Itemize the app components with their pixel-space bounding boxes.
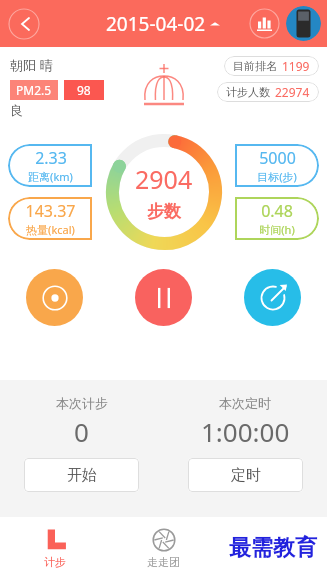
staticText: 走走团 [147,555,180,569]
button[interactable]: Back [8,8,40,40]
button[interactable]: 目前排名 [224,56,319,76]
button[interactable]: 定时 [188,458,303,492]
staticText: 计步 [44,555,66,569]
button[interactable]: Pause [135,269,192,326]
staticText: 距离(km) [28,169,73,184]
button[interactable]: 2.33 [8,144,92,187]
button[interactable]: 5000 [235,144,319,187]
button[interactable]: 开始 [24,458,139,492]
button[interactable]: Profile [286,6,321,41]
button[interactable]: 走走团 [109,517,218,579]
staticText: 0 [74,414,89,449]
staticText: 143.37 [25,200,76,222]
staticText: 开始 [67,466,97,485]
button[interactable]: 计步 [0,517,109,579]
button[interactable]: Statistics [249,8,280,39]
staticText: 时间(h) [259,222,295,237]
staticText: 本次定时 [219,395,271,411]
staticText: 2904 [135,162,193,196]
staticText: 热量(kcal) [26,222,75,237]
staticText: 1:00:00 [201,414,290,449]
staticText: 计步人数 [226,85,270,99]
staticText: PM2.5 [16,82,52,98]
staticText: 98 [77,82,91,98]
button[interactable]: 计步人数 [217,82,319,102]
button[interactable]: Locate [26,269,83,326]
button[interactable]: 0.48 [235,197,319,240]
staticText: 22974 [275,84,310,100]
button[interactable]: Share [244,269,301,326]
staticText: 本次计步 [56,395,108,411]
staticText: 2015-04-02 [106,11,206,37]
staticText: 目标(步) [257,169,297,184]
staticText: 最需教育 [229,534,317,562]
staticText: 1199 [282,58,310,74]
staticText: 目前排名 [233,59,277,73]
staticText: 良 [10,102,23,118]
staticText: 2.33 [35,147,67,169]
button[interactable]: 2015-04-02 [106,11,221,37]
staticText: 步数 [147,201,181,222]
staticText: 5000 [259,147,296,169]
staticText: 定时 [231,466,261,485]
button[interactable]: 143.37 [8,197,92,240]
staticText: 0.48 [261,200,293,222]
staticText: 朝阳 晴 [10,56,53,74]
